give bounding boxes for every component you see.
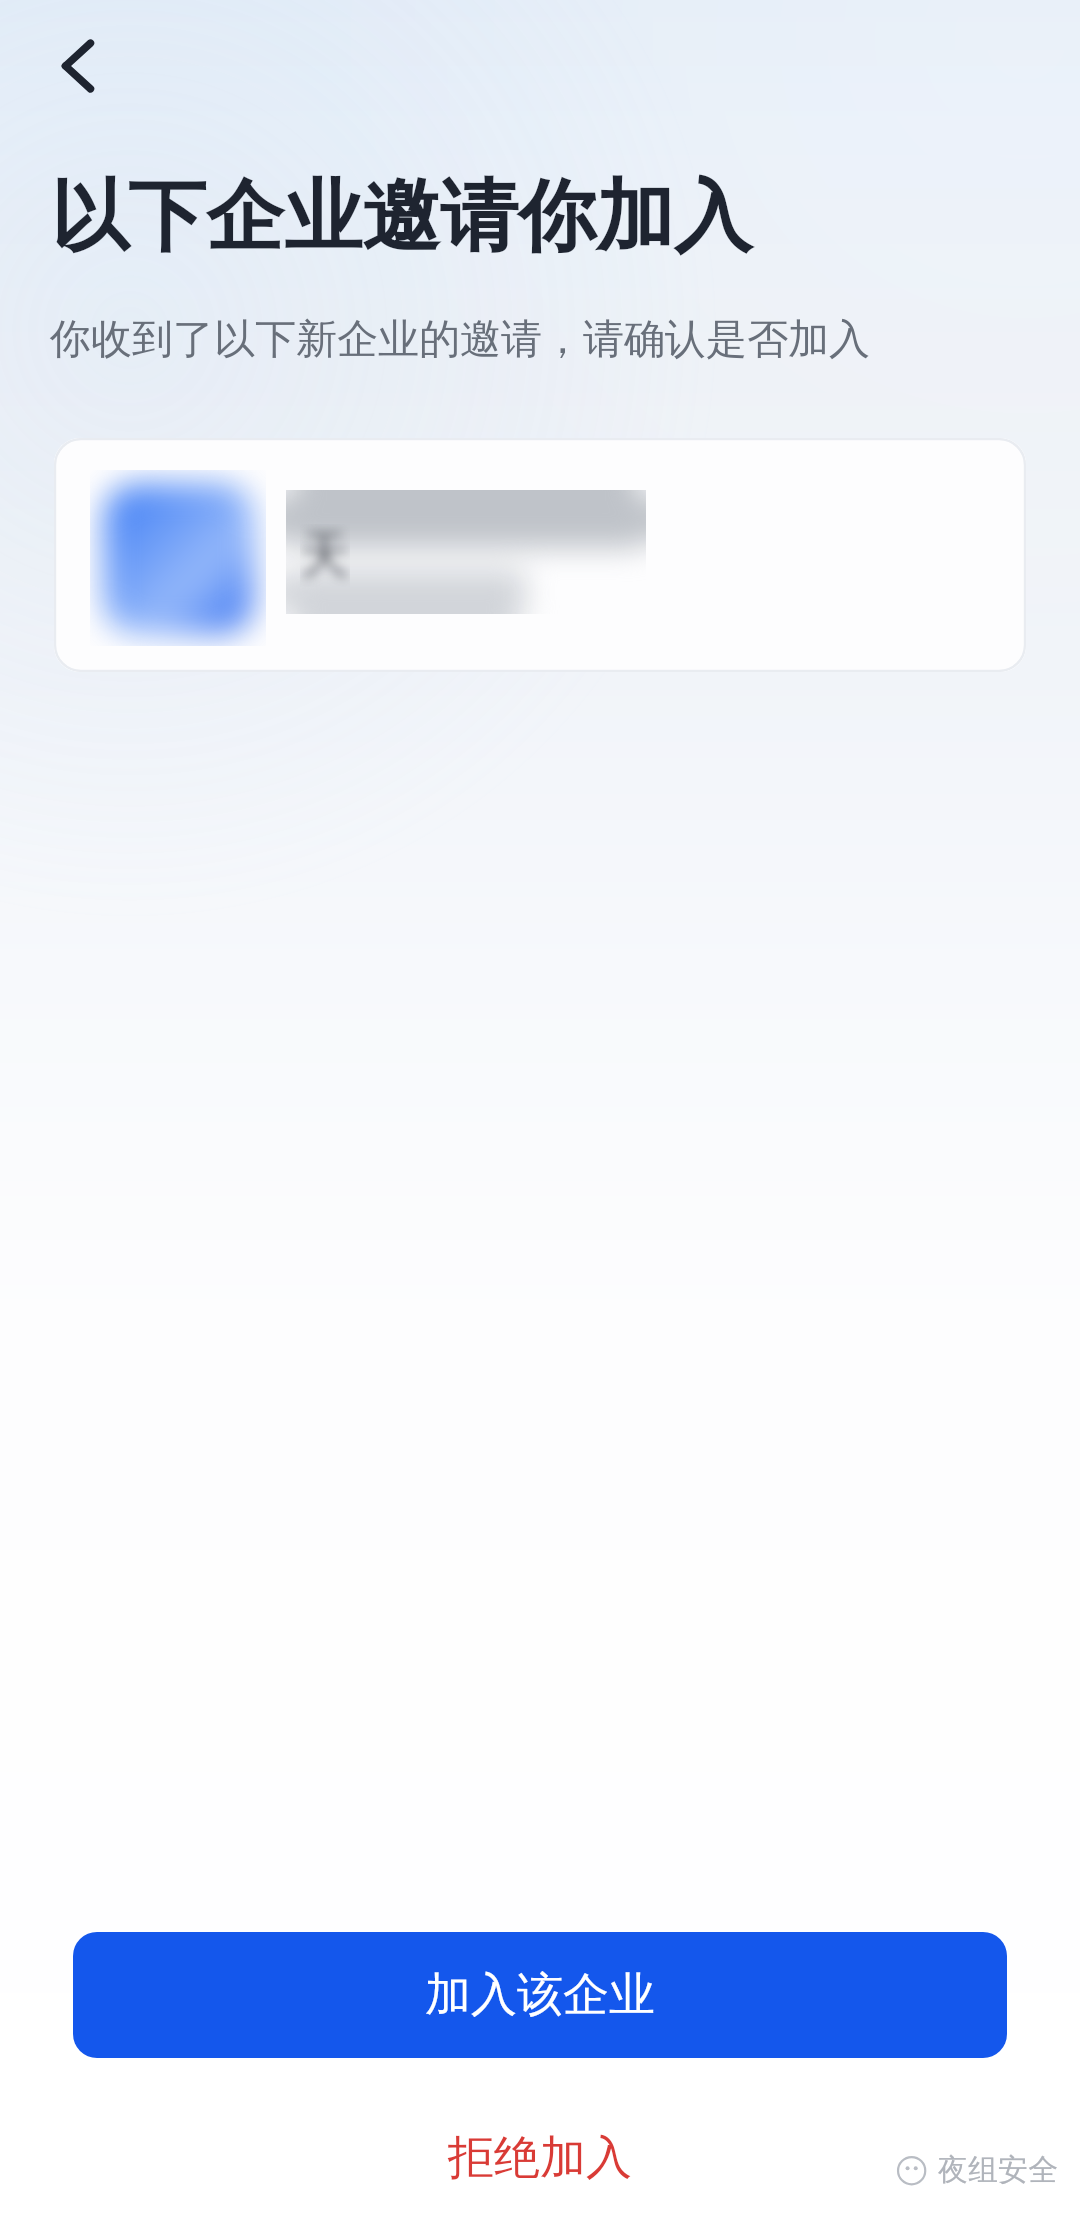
staticText: 你收到了以下新企业的邀请，请确认是否加入 [50, 314, 870, 366]
button[interactable]: 返回 [22, 10, 134, 122]
button[interactable]: 加入该企业 [73, 1932, 1007, 2058]
staticText: 天 [300, 524, 350, 587]
staticText: 夜组安全 [938, 2151, 1058, 2189]
staticText: 加入该企业 [425, 1966, 655, 2024]
button[interactable]: 天 [54, 438, 1026, 672]
staticText: 以下企业邀请你加入 [50, 168, 752, 266]
staticText: 拒绝加入 [448, 2129, 632, 2187]
button[interactable]: 拒绝加入 [0, 2106, 1080, 2210]
